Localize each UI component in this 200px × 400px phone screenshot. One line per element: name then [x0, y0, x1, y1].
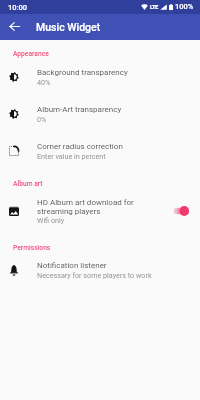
- staticText: HD Album art download for: [37, 198, 134, 207]
- staticText: Necessary for some players to work: [37, 271, 152, 279]
- staticText: Album-Art transparency: [37, 105, 122, 114]
- staticText: 10:00: [8, 3, 28, 12]
- staticText: Notification listener: [37, 261, 107, 270]
- button[interactable]: HD album art download toggle: [172, 190, 198, 232]
- staticText: 0%: [37, 115, 47, 123]
- staticText: Appearance: [13, 50, 49, 58]
- button[interactable]: Corner radius correction: [0, 133, 200, 169]
- staticText: 100%: [175, 2, 194, 11]
- button[interactable]: Notification listener: [0, 252, 200, 288]
- button[interactable]: Back: [2, 14, 26, 38]
- staticText: Corner radius correction: [37, 142, 123, 151]
- button[interactable]: Album-Art transparency: [0, 96, 200, 132]
- button[interactable]: HD Album art download for: [0, 190, 200, 232]
- staticText: Enter value in percent: [37, 152, 106, 160]
- staticText: LTE: [150, 4, 159, 10]
- button[interactable]: Background transparency: [0, 59, 200, 95]
- staticText: Album art: [13, 180, 43, 188]
- staticText: Wifi only: [37, 216, 65, 224]
- staticText: Music Widget: [36, 21, 101, 33]
- staticText: 40%: [37, 78, 51, 86]
- staticText: Background transparency: [37, 68, 128, 77]
- staticText: Permissions: [13, 244, 51, 252]
- staticText: streaming players: [37, 207, 101, 216]
